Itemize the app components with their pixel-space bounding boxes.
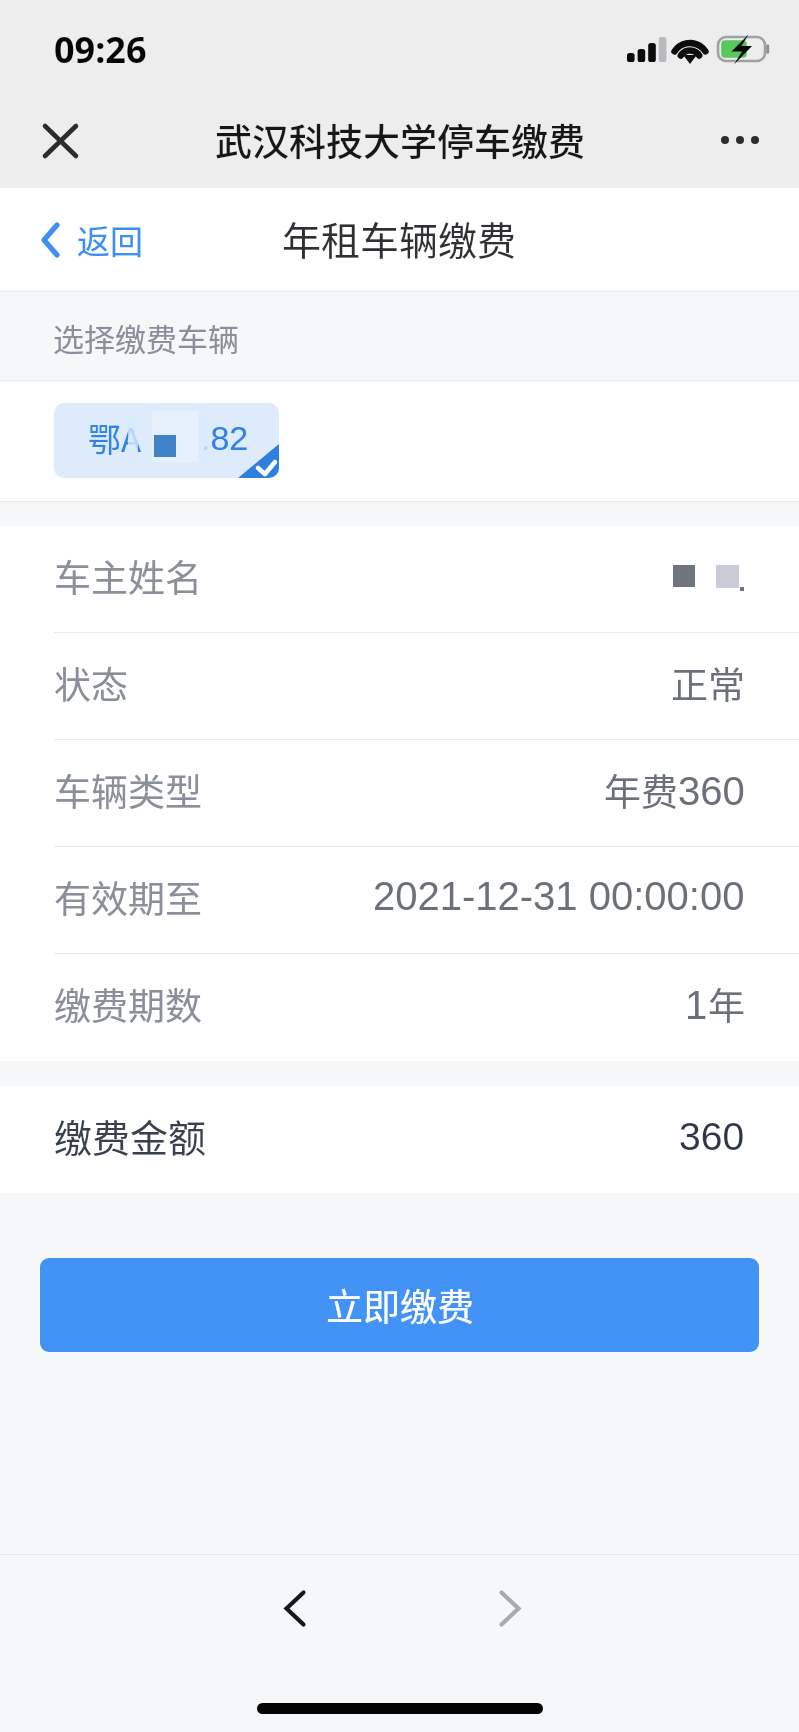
staticText: 2021-12-31 00:00:00	[373, 874, 745, 919]
staticText: 09:26	[54, 25, 147, 74]
staticText: 鄂A	[88, 414, 142, 462]
button[interactable]: 缴费期数	[0, 954, 799, 1061]
button[interactable]: 车辆类型	[0, 740, 799, 847]
staticText: 状态	[54, 656, 128, 710]
staticText: 年租车辆缴费	[282, 210, 517, 266]
staticText: 武汉科技大学停车缴费	[215, 113, 585, 167]
staticText: 返回	[77, 216, 143, 264]
staticText: 立即缴费	[326, 1278, 474, 1332]
button[interactable]: 有效期至	[0, 847, 799, 954]
button[interactable]: Forward	[468, 1566, 552, 1650]
button[interactable]: 立即缴费	[40, 1258, 759, 1352]
button[interactable]: Back	[253, 1566, 337, 1650]
staticText: 年费	[604, 763, 678, 817]
button[interactable]: 车主姓名	[0, 526, 799, 633]
staticText: 缴费期数	[54, 977, 202, 1031]
button[interactable]: 鄂A	[54, 403, 279, 478]
staticText: .82	[201, 419, 249, 457]
staticText: 360	[679, 1115, 745, 1159]
staticText: 缴费金额	[54, 1108, 207, 1163]
staticText: 选择缴费车辆	[53, 315, 239, 360]
staticText: 有效期至	[54, 870, 202, 924]
staticText: 车辆类型	[54, 763, 202, 817]
staticText: 1	[685, 983, 708, 1028]
button[interactable]: More options	[704, 104, 776, 176]
button[interactable]: 状态	[0, 633, 799, 740]
staticText: 车主姓名	[54, 549, 202, 603]
staticText: 360	[678, 769, 745, 814]
staticText: 年	[708, 977, 745, 1031]
button[interactable]: 返回	[41, 216, 143, 264]
staticText: 正常	[671, 656, 745, 710]
button[interactable]: Close	[25, 105, 96, 176]
